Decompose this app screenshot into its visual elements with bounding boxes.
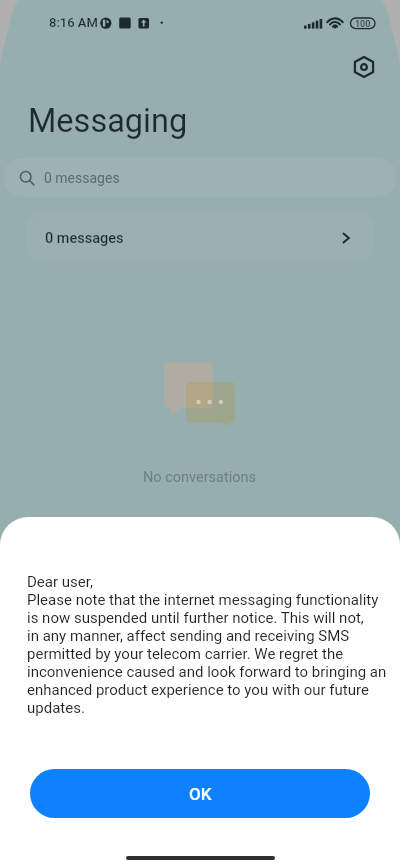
staticText: No conversations — [143, 469, 257, 486]
staticText: 0 messages — [44, 170, 120, 186]
staticText: Messaging — [28, 102, 188, 140]
button[interactable]: Settings — [346, 49, 382, 85]
staticText: OK — [189, 784, 212, 804]
button[interactable]: OK — [30, 769, 370, 818]
button[interactable]: 0 messages — [26, 213, 374, 263]
staticText: 0 messages — [45, 230, 124, 247]
staticText: 8:16 AM — [49, 15, 98, 30]
button[interactable]: 0 messages — [3, 158, 397, 197]
staticText: 100 — [355, 19, 371, 30]
staticText: Dear user, Please note that the internet… — [27, 573, 397, 717]
